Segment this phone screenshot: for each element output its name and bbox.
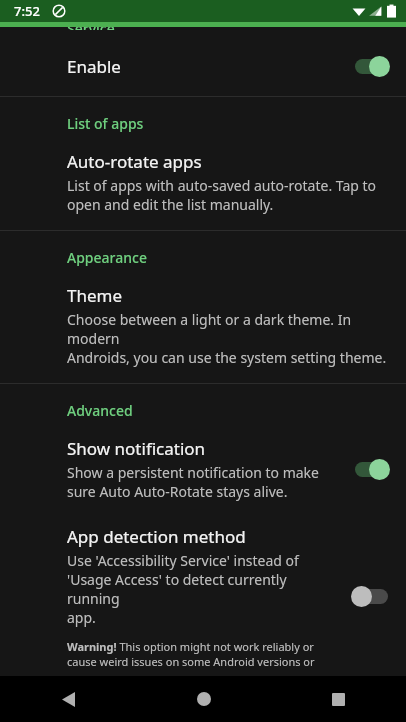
staticText: Enable <box>67 55 350 78</box>
button[interactable]: Enable <box>0 38 406 96</box>
staticText: App detection method <box>67 525 246 548</box>
staticText: Warning! This option might not work reli… <box>67 639 340 666</box>
button[interactable]: Theme <box>0 267 406 383</box>
staticText: Service <box>67 27 115 30</box>
staticText: Appearance <box>67 248 147 267</box>
button[interactable]: App detection method <box>0 513 406 676</box>
staticText: Theme <box>67 284 123 307</box>
staticText: List of apps with auto-saved auto-rotate… <box>67 176 377 214</box>
staticText: 7:52 <box>14 2 40 20</box>
staticText: Show a persistent notification to make s… <box>67 463 319 501</box>
button[interactable]: Recent apps <box>271 676 406 722</box>
staticText: Advanced <box>67 401 133 420</box>
button[interactable]: Auto-rotate apps <box>0 133 406 230</box>
staticText: List of apps <box>67 114 144 133</box>
staticText: Use 'Accessibility Service' instead of '… <box>67 551 340 627</box>
staticText: Auto-rotate apps <box>67 150 202 173</box>
button[interactable]: Show notification <box>0 420 406 513</box>
staticText: Show notification <box>67 437 206 460</box>
button[interactable]: Home <box>136 676 271 722</box>
staticText: Choose between a light or a dark theme. … <box>67 310 392 367</box>
button[interactable]: Back <box>0 676 136 722</box>
